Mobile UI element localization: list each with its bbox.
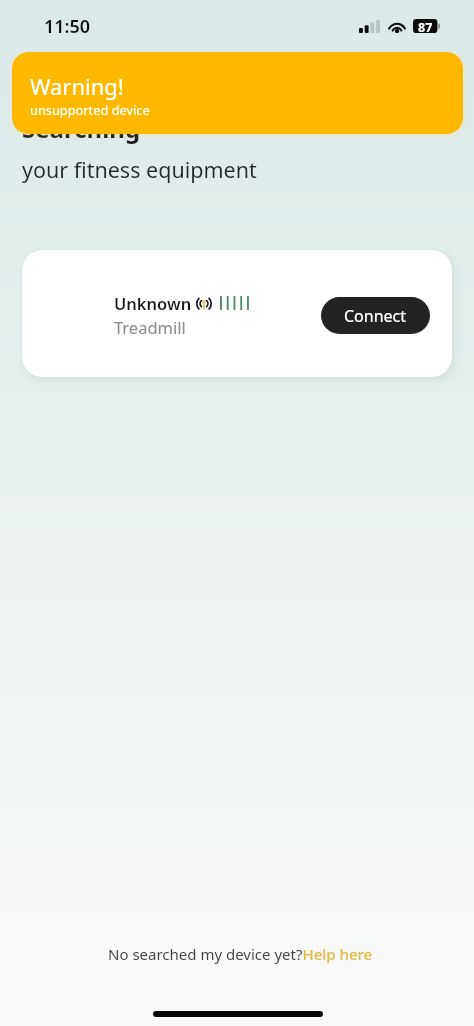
staticText: Connect (344, 305, 407, 327)
staticText: your fitness equipment (22, 155, 257, 184)
staticText: Warning! (30, 71, 124, 101)
button[interactable]: Warning! (12, 52, 463, 134)
button[interactable]: Unknown (22, 250, 452, 377)
staticText: Treadmill (114, 316, 186, 338)
button[interactable]: No searched my device yet?Help here (108, 944, 373, 964)
button[interactable]: Connect (321, 297, 430, 334)
staticText: 87 (418, 19, 433, 33)
staticText: unsupported device (30, 101, 150, 118)
other: Wireless signal (196, 295, 212, 311)
staticText: Unknown (114, 292, 192, 314)
staticText: 11:50 (44, 14, 91, 39)
staticText: Searching (22, 112, 141, 145)
